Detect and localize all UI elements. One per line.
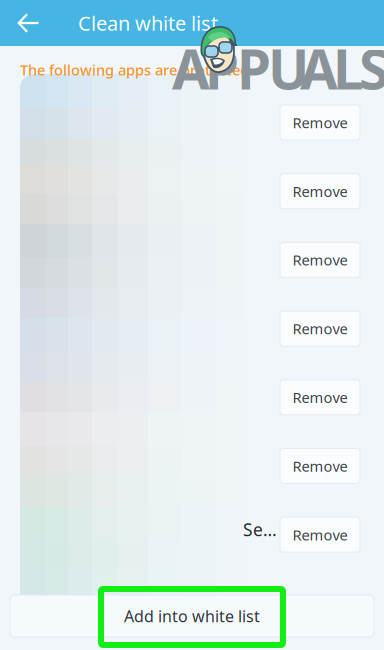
staticText: Add into white list [124, 605, 260, 627]
button[interactable]: Remove [280, 448, 360, 483]
staticText: A [300, 32, 338, 105]
staticText: A [172, 32, 210, 105]
staticText: Remove [292, 250, 347, 270]
button[interactable]: Remove [280, 380, 360, 415]
staticText: S [359, 32, 384, 105]
staticText: Remove [292, 181, 347, 201]
staticText: Clean white list [78, 10, 218, 36]
button[interactable]: Back [0, 0, 56, 46]
staticText: Remove [292, 319, 347, 338]
staticText: The following apps are protected [20, 60, 249, 79]
button[interactable]: Remove [280, 105, 360, 140]
button[interactable]: Add into white list [10, 595, 374, 637]
staticText: Se… [243, 518, 277, 541]
staticText: U [268, 32, 309, 105]
button[interactable]: Remove [280, 311, 360, 346]
button[interactable]: Remove [280, 517, 360, 552]
staticText: L [333, 32, 364, 105]
button[interactable]: Remove [280, 174, 360, 209]
staticText: P [237, 32, 271, 105]
staticText: Remove [292, 113, 347, 132]
staticText: P [205, 32, 239, 105]
staticText: Remove [292, 388, 347, 407]
staticText: Remove [292, 525, 347, 544]
button[interactable]: Remove [280, 242, 360, 277]
staticText: Remove [292, 456, 347, 476]
